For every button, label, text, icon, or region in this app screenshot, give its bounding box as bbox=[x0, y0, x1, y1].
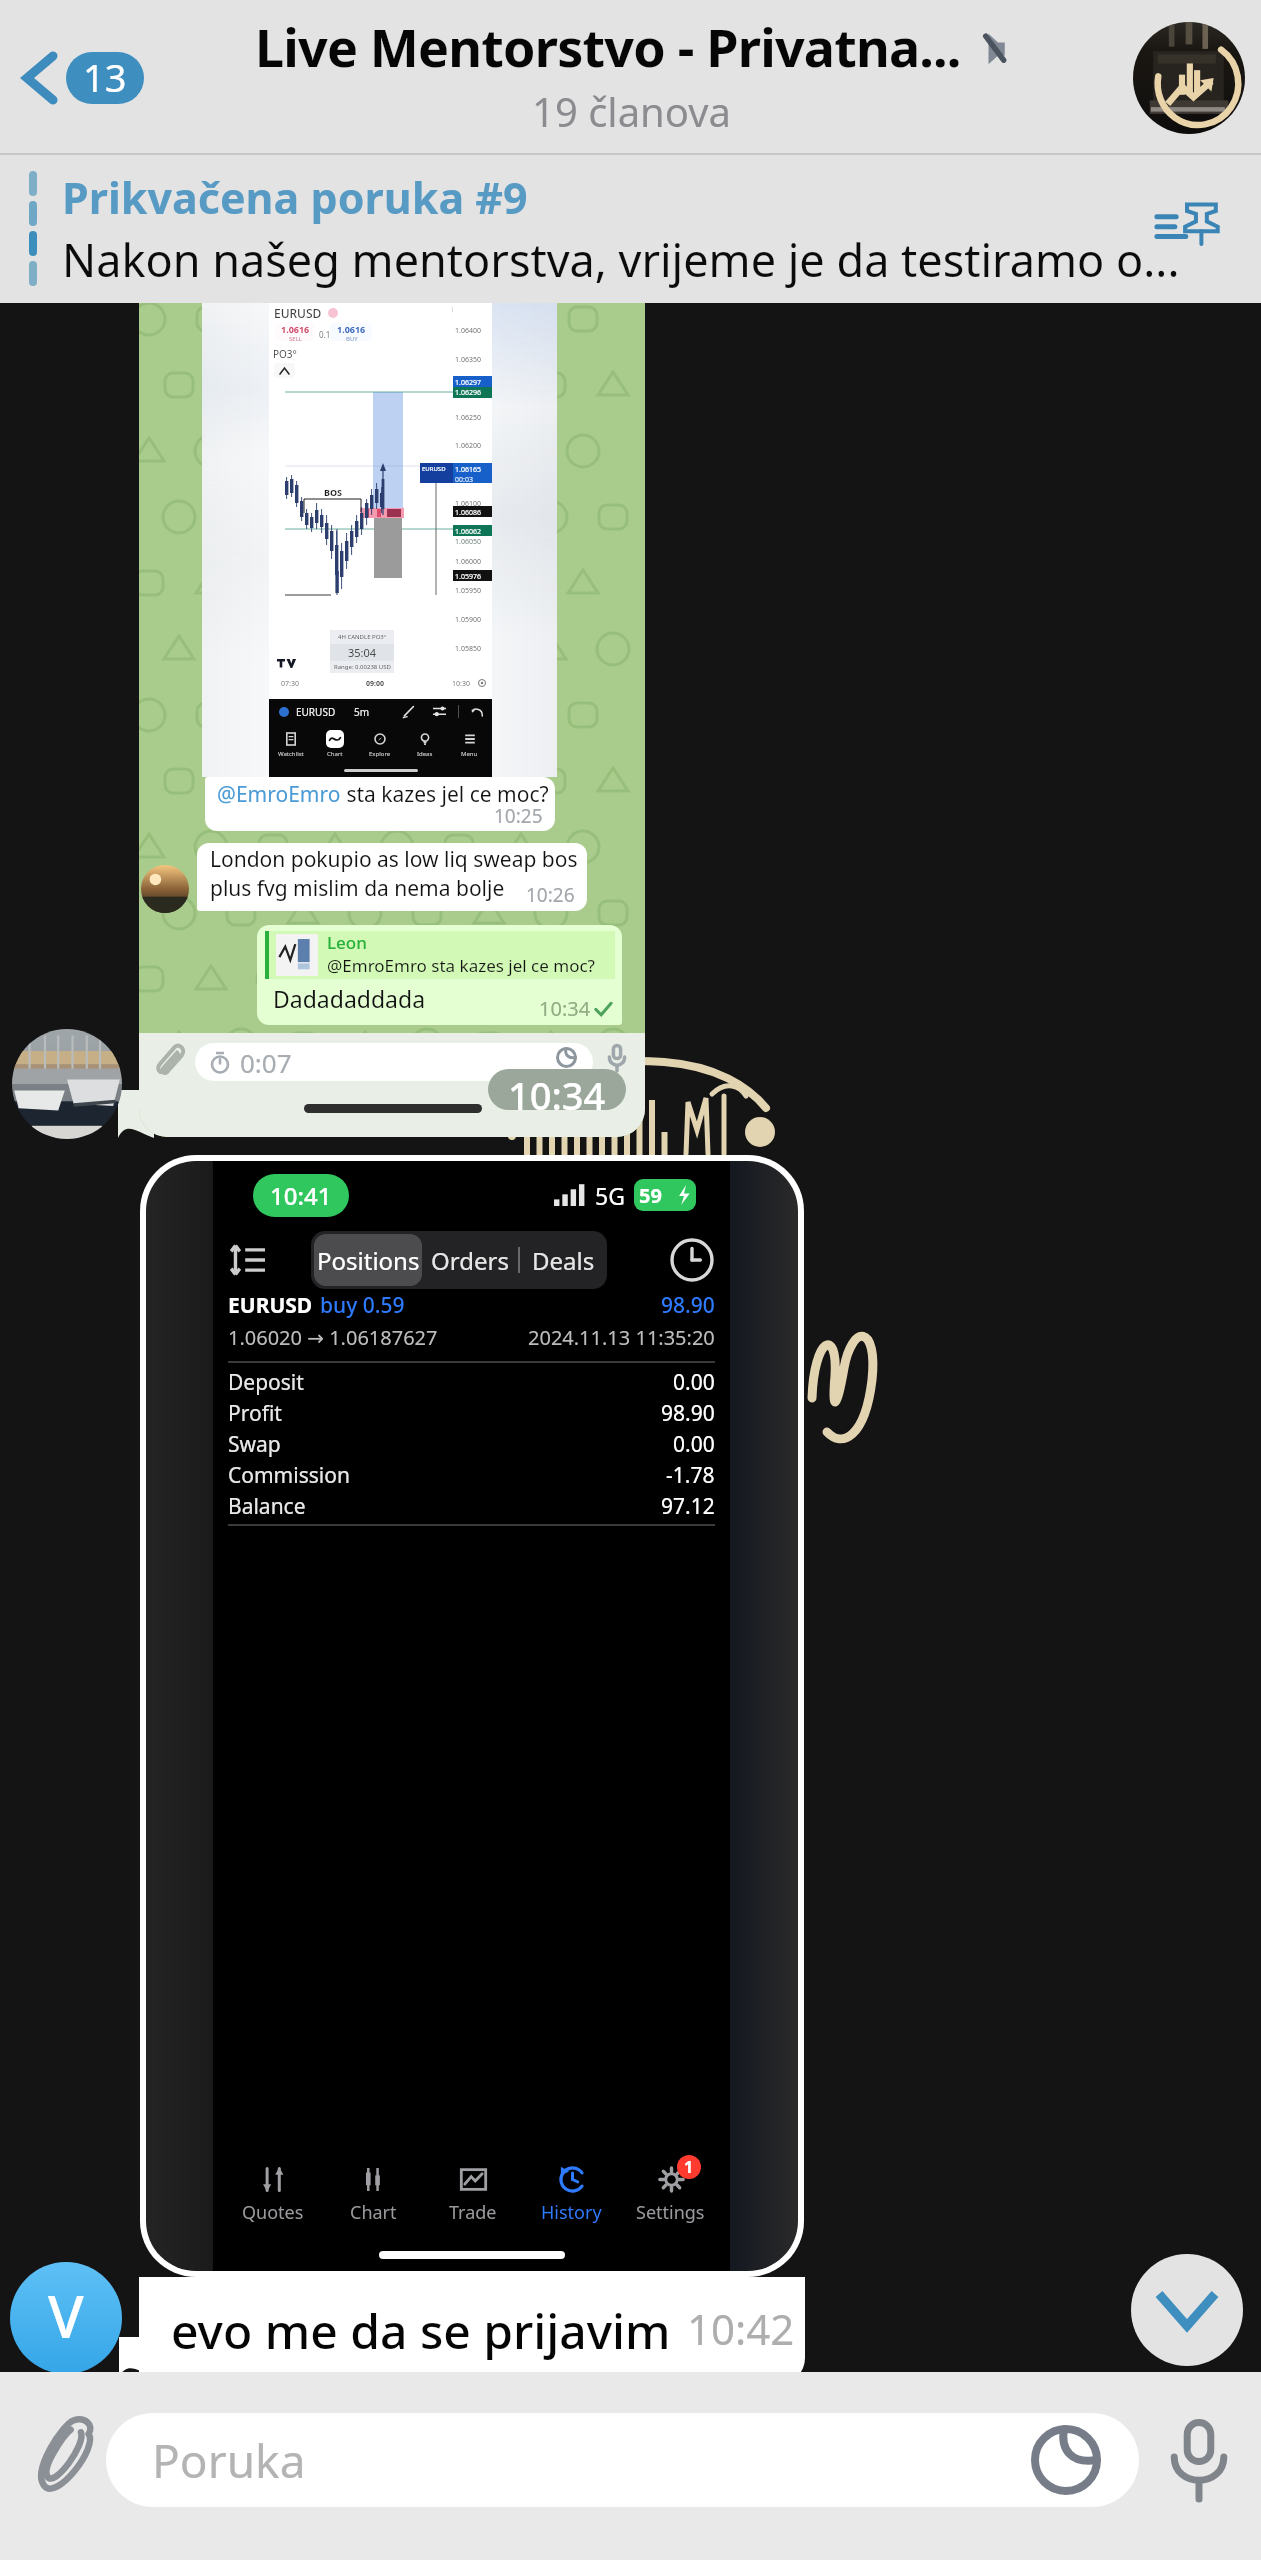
button[interactable]: Chart bbox=[323, 2162, 423, 2225]
staticText: 1.05976 bbox=[455, 572, 481, 582]
staticText: 1.06250 bbox=[455, 413, 481, 423]
staticText: 1.05900 bbox=[455, 615, 481, 625]
staticText: Settings bbox=[636, 2200, 705, 2225]
staticText: 10:34 bbox=[539, 995, 591, 1022]
staticText: USD bbox=[452, 305, 469, 316]
staticText: Quotes bbox=[242, 2200, 304, 2225]
button[interactable]: Sort bbox=[229, 1242, 265, 1278]
staticText: 1.06200 bbox=[455, 441, 481, 451]
staticText: 98.90 bbox=[661, 1291, 715, 1320]
button[interactable]: evo me da se prijavim bbox=[139, 2277, 805, 2384]
staticText: SELL bbox=[289, 335, 302, 341]
staticText: 19 članova bbox=[532, 84, 731, 138]
staticText: V bbox=[48, 2276, 84, 2355]
staticText: @EmroEmro bbox=[217, 780, 341, 809]
staticText: 10:30 bbox=[452, 679, 470, 689]
staticText: 10:41 bbox=[270, 1179, 332, 1212]
staticText: 98.90 bbox=[661, 1399, 715, 1428]
staticText: 1.0616 bbox=[281, 323, 310, 335]
staticText: 1.06086 bbox=[455, 508, 481, 518]
staticText: 2024.11.13 11:35:20 bbox=[528, 1324, 715, 1351]
staticText: 0:07 bbox=[240, 1045, 292, 1080]
button[interactable]: Orders bbox=[422, 1234, 518, 1286]
staticText: 0.00 bbox=[673, 1430, 715, 1459]
staticText: 1.06000 bbox=[455, 557, 481, 567]
button[interactable]: Prikvačena poruka #9 bbox=[0, 155, 1261, 303]
staticText: Poruka bbox=[152, 2429, 306, 2492]
staticText: 10:34 bbox=[508, 1069, 606, 1110]
staticText: 35:04 bbox=[348, 645, 377, 660]
staticText: 1.06400 bbox=[455, 326, 481, 336]
button[interactable]: Trade bbox=[423, 2162, 522, 2225]
staticText: 1.06296 bbox=[455, 388, 481, 398]
button[interactable]: Poruka bbox=[106, 2413, 1139, 2507]
staticText: @EmroEmro sta kazes jel ce moc? bbox=[327, 954, 595, 977]
staticText: Leon bbox=[327, 931, 367, 954]
staticText: Watchlist bbox=[278, 750, 304, 758]
button[interactable]: Explore bbox=[357, 730, 402, 758]
other: Pinned messages bbox=[1155, 193, 1219, 251]
staticText: EURUSD bbox=[228, 1291, 313, 1320]
button[interactable]: Chart bbox=[313, 730, 357, 758]
button[interactable]: Watchlist bbox=[269, 730, 313, 758]
staticText: 97.12 bbox=[661, 1492, 715, 1521]
staticText: Chart bbox=[327, 750, 343, 758]
staticText: BOS bbox=[324, 486, 343, 498]
staticText: 10:25 bbox=[494, 803, 543, 829]
staticText: Menu bbox=[461, 750, 478, 758]
staticText: Chart bbox=[350, 2200, 397, 2225]
staticText: 09:00 bbox=[366, 679, 384, 689]
staticText: 1.06350 bbox=[455, 355, 481, 365]
staticText: Deals bbox=[532, 1244, 595, 1277]
button[interactable]: EURUSD bbox=[139, 303, 645, 1137]
staticText: Dadadaddada bbox=[273, 983, 426, 1014]
button[interactable]: 10:41 bbox=[140, 1155, 804, 2277]
staticText: Explore bbox=[369, 750, 391, 758]
staticText: Swap bbox=[228, 1430, 281, 1459]
button[interactable]: 1 bbox=[621, 2162, 720, 2225]
staticText: 1.06050 bbox=[455, 537, 481, 547]
staticText: evo me da se prijavim bbox=[171, 2298, 671, 2363]
other: Stickers bbox=[1031, 2425, 1101, 2495]
staticText: Balance bbox=[228, 1492, 306, 1521]
staticText: Range: 0.00238 USD bbox=[334, 663, 391, 671]
button[interactable]: Positions bbox=[314, 1234, 422, 1286]
staticText: 4H CANDLE PO3° bbox=[338, 633, 387, 641]
staticText: 1.0616 bbox=[337, 323, 366, 335]
staticText: Positions bbox=[317, 1244, 420, 1277]
staticText: 10:42 bbox=[687, 2300, 795, 2357]
staticText: London pokupio as low liq sweap bos bbox=[210, 845, 578, 874]
staticText: EURUSD bbox=[274, 305, 322, 321]
button[interactable]: Back, 13 unread bbox=[10, 32, 158, 124]
staticText: 10:26 bbox=[526, 882, 575, 908]
button[interactable]: Scroll to bottom bbox=[1131, 2254, 1243, 2366]
button[interactable]: Group profile photo bbox=[1133, 22, 1245, 134]
button[interactable]: Ideas bbox=[402, 730, 447, 758]
staticText: PO3° bbox=[273, 347, 297, 361]
button[interactable]: Deals bbox=[520, 1234, 607, 1286]
staticText: 0.1 bbox=[319, 329, 331, 340]
staticText: 1.06100 bbox=[455, 499, 481, 509]
button[interactable]: History bbox=[670, 1238, 714, 1282]
staticText: 13 bbox=[83, 52, 127, 103]
button[interactable]: Menu bbox=[447, 730, 492, 758]
staticText: BUY bbox=[346, 335, 358, 341]
staticText: 1.06020 → 1.06187627 bbox=[228, 1324, 438, 1351]
button[interactable]: Record voice message bbox=[1149, 2410, 1249, 2510]
staticText: EURUSD bbox=[422, 465, 446, 473]
staticText: EURUSD bbox=[296, 705, 336, 719]
staticText: buy 0.59 bbox=[320, 1291, 405, 1320]
button[interactable]: Attach file bbox=[20, 2417, 106, 2503]
staticText: 59 bbox=[639, 1182, 662, 1209]
staticText: 1 bbox=[684, 2156, 694, 2178]
staticText: -1.78 bbox=[666, 1461, 715, 1490]
staticText: Commission bbox=[228, 1461, 350, 1490]
button[interactable]: History bbox=[522, 2162, 621, 2225]
staticText: plus fvg mislim da nema bolje bbox=[210, 874, 505, 903]
staticText: 1.05950 bbox=[455, 586, 481, 596]
staticText: 07:30 bbox=[281, 679, 299, 689]
staticText: History bbox=[541, 2200, 602, 2225]
staticText: 1.06297 bbox=[455, 378, 481, 388]
staticText: 5m bbox=[354, 705, 370, 719]
button[interactable]: Quotes bbox=[223, 2162, 323, 2225]
